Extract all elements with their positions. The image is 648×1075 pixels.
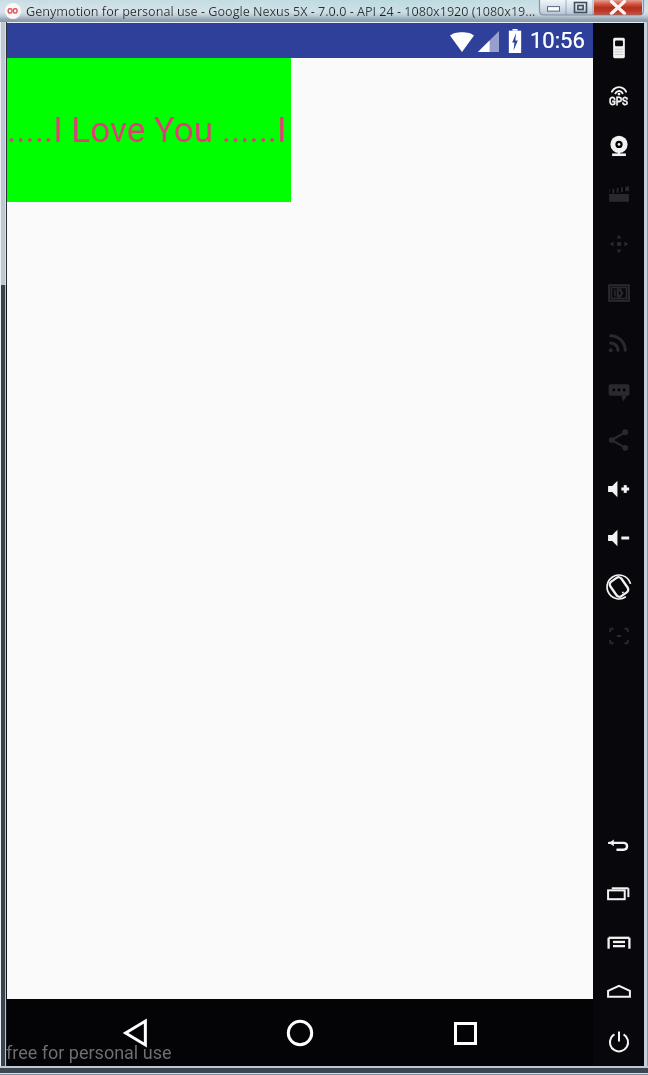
- button[interactable]: Volume up: [593, 464, 644, 513]
- button[interactable]: Video: [593, 170, 644, 219]
- button[interactable]: Phone: [593, 23, 644, 72]
- button[interactable]: Minimize: [540, 0, 567, 15]
- button[interactable]: Recent apps: [593, 869, 644, 918]
- staticText: .....I Love You ......I Love You .....: [7, 110, 291, 151]
- button[interactable]: Back: [593, 820, 644, 869]
- button[interactable]: Home: [593, 967, 644, 1016]
- button[interactable]: Screenshot: [593, 611, 644, 660]
- staticText: Genymotion for personal use - Google Nex…: [26, 3, 536, 20]
- button[interactable]: SMS: [593, 366, 644, 415]
- staticText: 10:56: [530, 28, 585, 54]
- button[interactable]: Back: [112, 1009, 160, 1057]
- button[interactable]: Maximize: [567, 0, 594, 15]
- button[interactable]: Share: [593, 415, 644, 464]
- button[interactable]: .....I Love You ......I Love You .....: [7, 58, 291, 202]
- button[interactable]: Rotate: [593, 562, 644, 611]
- button[interactable]: Network: [593, 317, 644, 366]
- button[interactable]: Home: [276, 1009, 324, 1057]
- staticText: free for personal use: [6, 1042, 172, 1063]
- button[interactable]: Menu: [593, 918, 644, 967]
- staticText: GPS: [609, 96, 629, 108]
- button[interactable]: Identifiers: [593, 268, 644, 317]
- button[interactable]: GPS: [593, 72, 644, 121]
- button[interactable]: Volume down: [593, 513, 644, 562]
- button[interactable]: Recent apps: [441, 1009, 489, 1057]
- button[interactable]: Camera: [593, 121, 644, 170]
- button[interactable]: Power: [593, 1016, 644, 1065]
- button[interactable]: Accelerometer: [593, 219, 644, 268]
- button[interactable]: Close: [594, 0, 642, 15]
